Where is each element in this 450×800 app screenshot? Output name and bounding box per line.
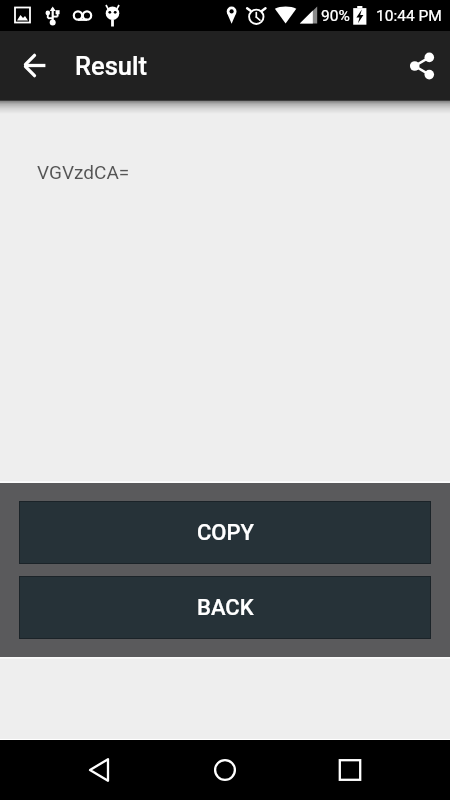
button[interactable]: BACK (19, 576, 431, 639)
staticText: BACK (197, 595, 254, 621)
staticText: Result (75, 51, 148, 81)
button[interactable]: COPY (19, 501, 431, 564)
staticText: 10:44 PM (376, 7, 442, 25)
staticText: COPY (197, 520, 254, 546)
button[interactable]: Home (195, 740, 255, 800)
button[interactable]: Share (394, 38, 450, 94)
button[interactable]: Recent apps (320, 740, 380, 800)
staticText: VGVzdCA= (37, 161, 130, 183)
button[interactable]: Back (0, 31, 58, 100)
staticText: 90% (321, 7, 350, 25)
button[interactable]: Back (70, 740, 130, 800)
